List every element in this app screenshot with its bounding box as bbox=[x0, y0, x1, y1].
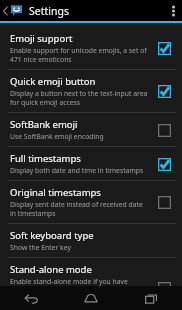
staticText: Enable stand-alone mode if you have disa… bbox=[10, 277, 148, 286]
button[interactable]: SoftBank emoji bbox=[0, 113, 182, 146]
button[interactable] bbox=[153, 80, 175, 102]
button[interactable] bbox=[153, 37, 175, 59]
staticText: Display sent date instead of received da… bbox=[10, 200, 148, 218]
button[interactable]: Emoji support bbox=[0, 27, 182, 69]
staticText: Enable support for unicode emojis, a set… bbox=[10, 46, 148, 64]
staticText: Display both date and time in timestamps bbox=[10, 166, 144, 175]
button[interactable] bbox=[153, 191, 175, 213]
staticText: Full timestamps bbox=[10, 152, 81, 165]
staticText: Quick emoji button bbox=[10, 75, 96, 88]
button[interactable]: Full timestamps bbox=[0, 147, 182, 180]
button[interactable] bbox=[153, 119, 175, 141]
button[interactable] bbox=[153, 277, 175, 286]
button[interactable]: Recent apps bbox=[121, 286, 182, 310]
button[interactable]: Navigate up bbox=[0, 1, 25, 20]
staticText: Stand-alone mode bbox=[10, 263, 92, 276]
staticText: SoftBank emoji bbox=[10, 118, 78, 131]
button[interactable]: Quick emoji button bbox=[0, 70, 182, 112]
button[interactable] bbox=[153, 153, 175, 175]
staticText: Emoji support bbox=[10, 32, 73, 45]
staticText: Use SoftBank emoji encoding bbox=[10, 132, 104, 141]
button[interactable]: Stand-alone mode bbox=[0, 258, 182, 286]
button[interactable]: Back bbox=[0, 286, 60, 310]
staticText: Display a button next to the text-input … bbox=[10, 89, 148, 107]
button[interactable]: More options bbox=[164, 0, 182, 21]
staticText: Soft keyboard type bbox=[10, 229, 94, 242]
button[interactable]: Soft keyboard type bbox=[0, 224, 182, 257]
staticText: Settings bbox=[29, 4, 69, 18]
staticText: Show the Enter key bbox=[10, 243, 71, 252]
button[interactable]: Original timestamps bbox=[0, 181, 182, 223]
button[interactable]: Home bbox=[60, 286, 121, 310]
staticText: Original timestamps bbox=[10, 186, 101, 199]
